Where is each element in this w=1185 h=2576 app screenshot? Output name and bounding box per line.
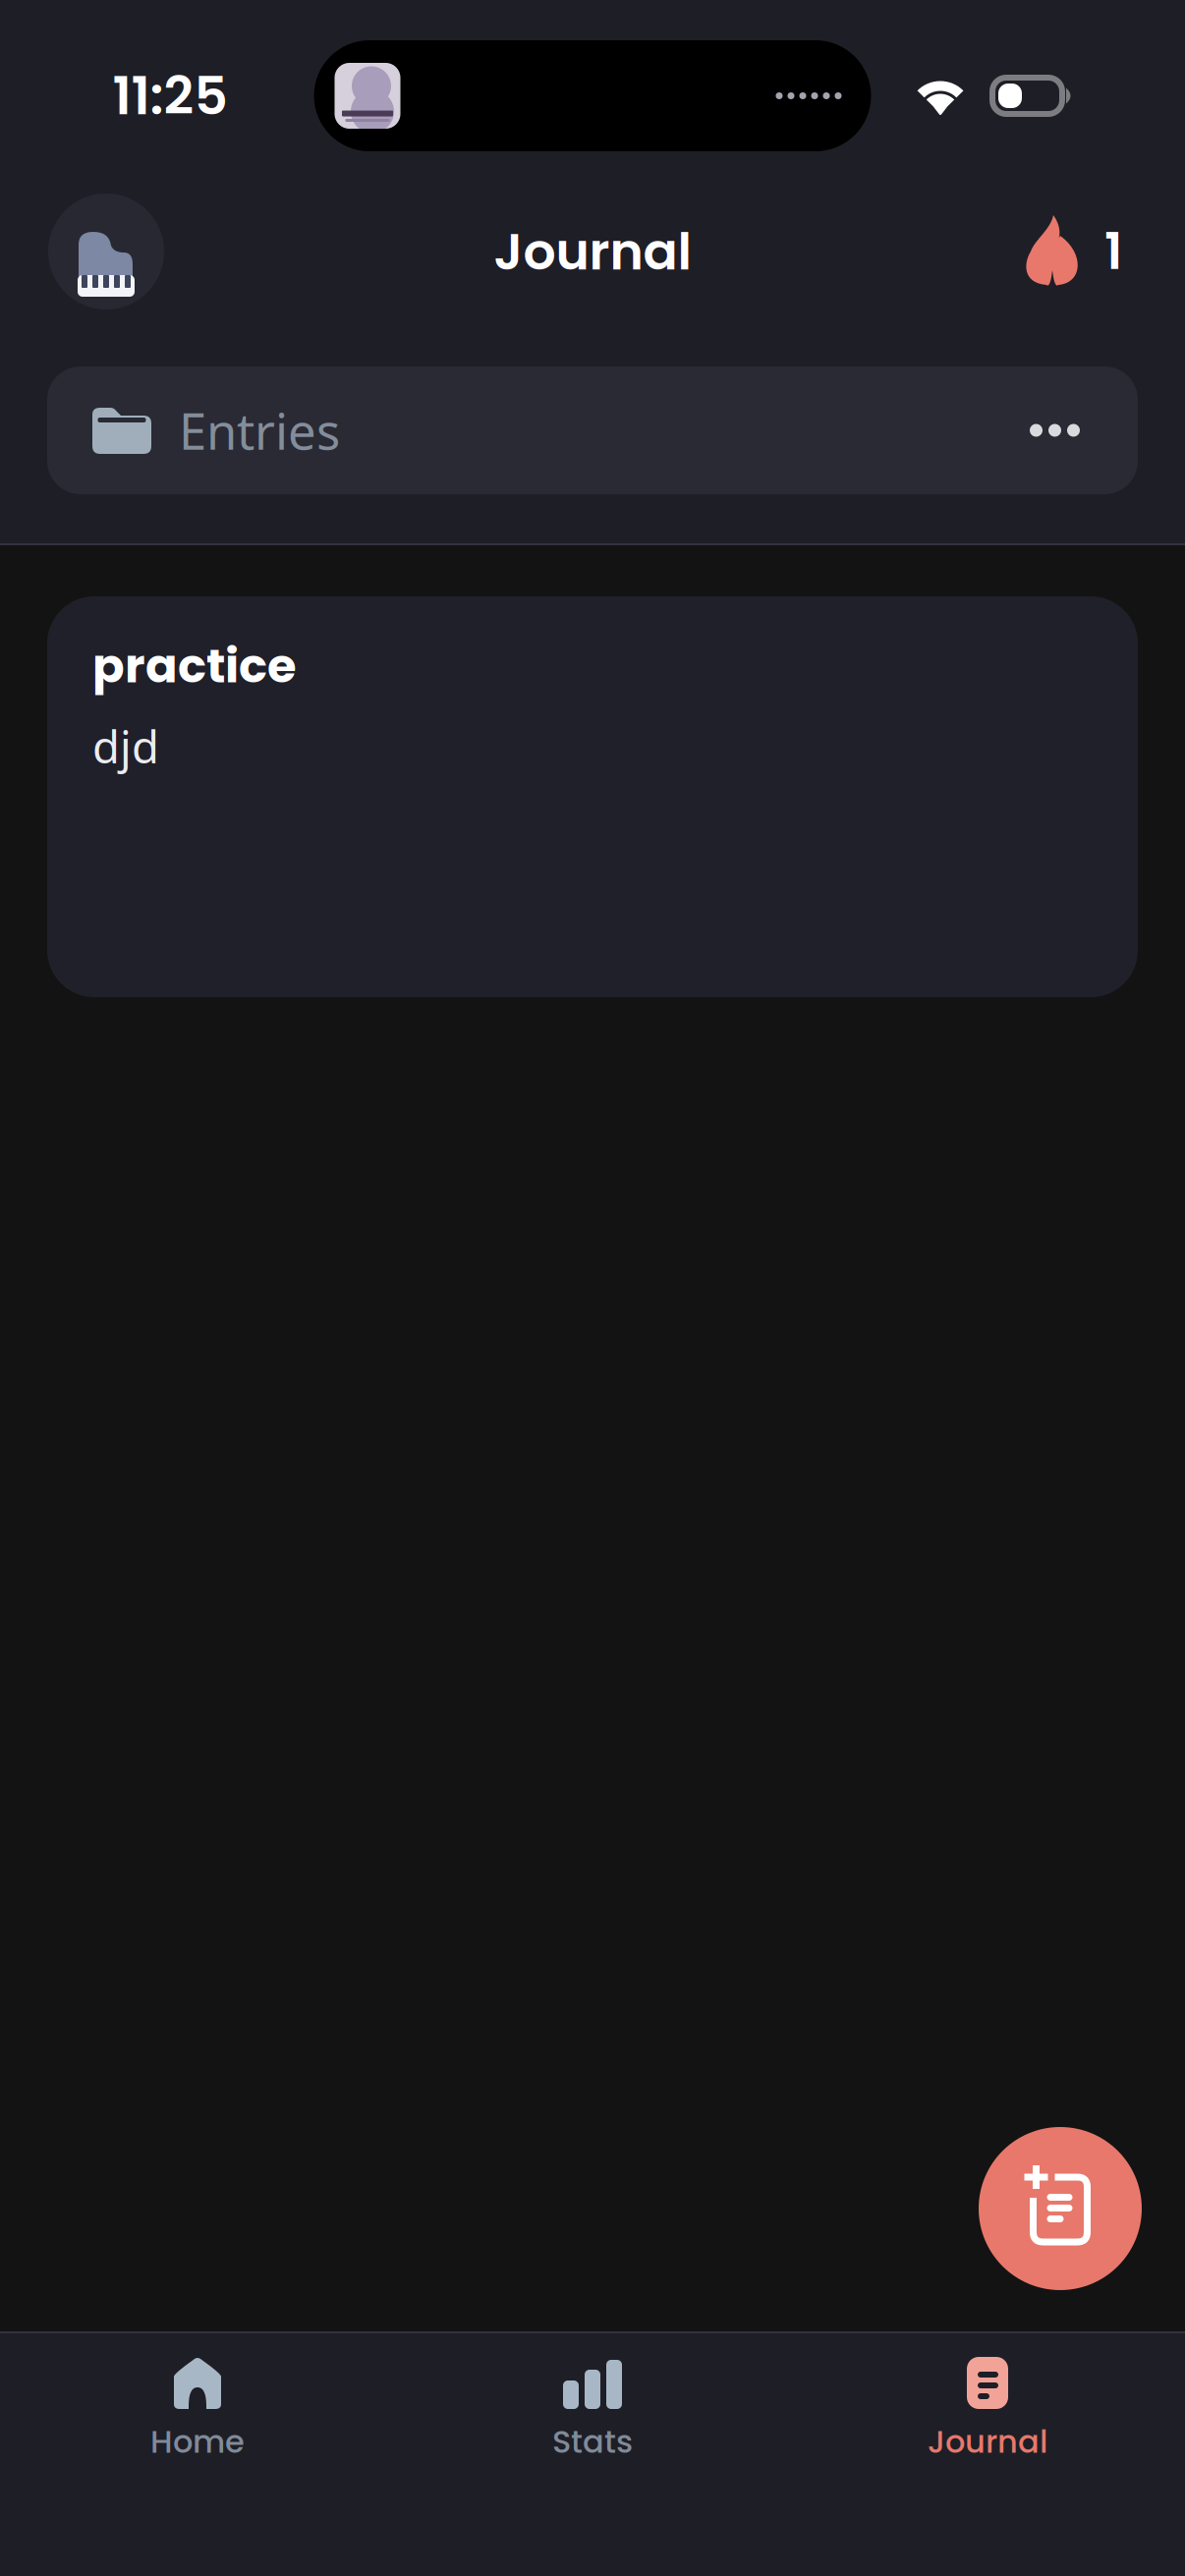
staticText: Entries bbox=[179, 397, 340, 463]
button[interactable]: Stats bbox=[395, 2357, 790, 2465]
staticText: Stats bbox=[552, 2420, 633, 2464]
button[interactable]: Streak: 1 day bbox=[1028, 194, 1122, 309]
button[interactable]: New entry bbox=[979, 2127, 1142, 2290]
button[interactable]: practice bbox=[47, 596, 1138, 997]
button[interactable]: Journal bbox=[790, 2357, 1185, 2465]
button[interactable]: Home bbox=[0, 2357, 395, 2465]
staticText: Home bbox=[150, 2420, 245, 2464]
button[interactable]: Instrument bbox=[48, 194, 164, 309]
staticText: practice bbox=[92, 633, 297, 699]
button[interactable]: Entries bbox=[47, 366, 1138, 494]
staticText: Journal bbox=[494, 216, 691, 287]
staticText: djd bbox=[92, 716, 159, 776]
staticText: Journal bbox=[928, 2420, 1047, 2464]
staticText: 1 bbox=[1104, 217, 1122, 286]
staticText: 11:25 bbox=[113, 59, 227, 133]
